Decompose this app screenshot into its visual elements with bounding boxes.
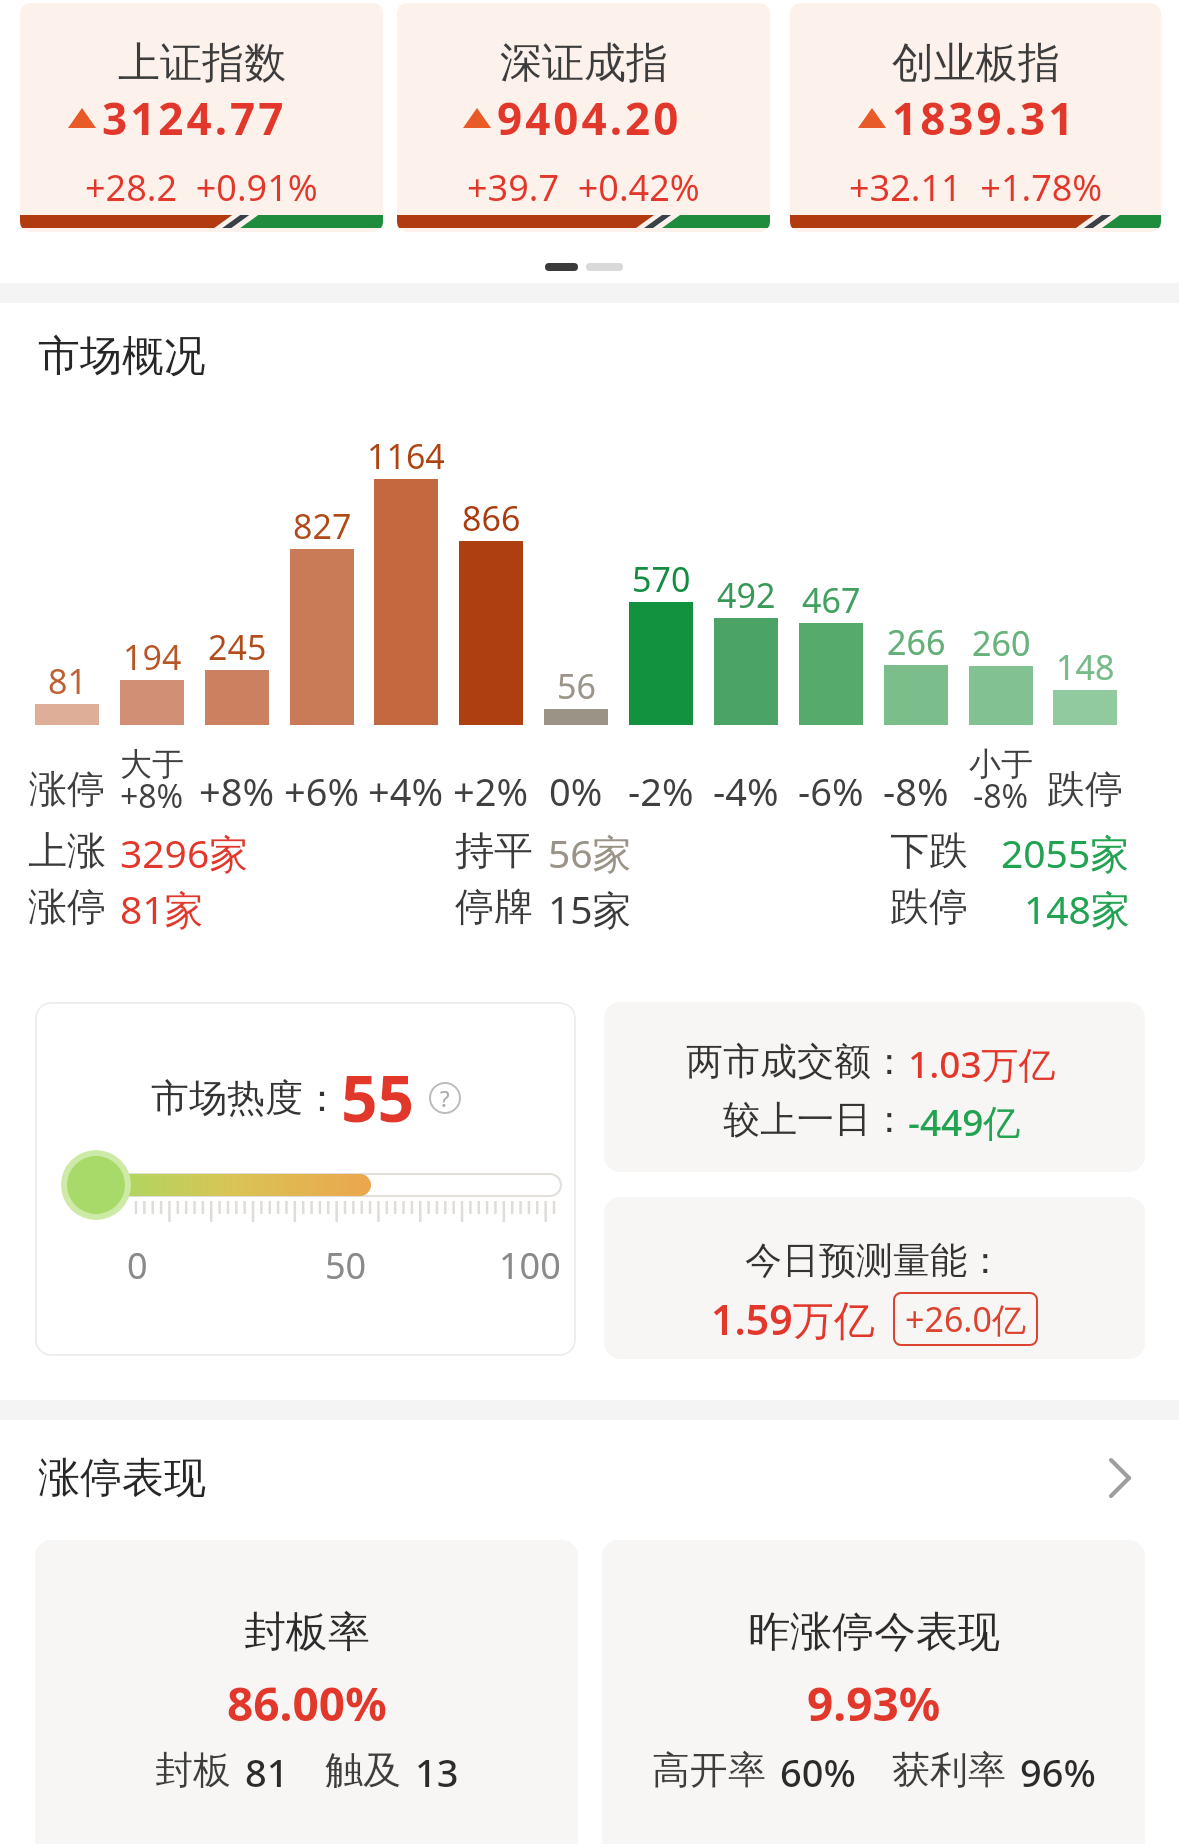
staticText: 492 bbox=[717, 572, 776, 608]
staticText: 涨停表现 bbox=[38, 1452, 206, 1505]
staticText: 3296家 bbox=[120, 826, 249, 879]
staticText: 封板率 bbox=[244, 1606, 370, 1659]
staticText: 81 bbox=[48, 658, 87, 694]
staticText: 60% bbox=[780, 1746, 856, 1798]
staticText: 深证成指 bbox=[500, 37, 668, 90]
staticText: 86.00% bbox=[227, 1672, 387, 1735]
staticText: 大于 bbox=[120, 744, 184, 780]
staticText: 上证指数 bbox=[118, 37, 286, 90]
staticText: +4% bbox=[368, 765, 444, 809]
staticText: 3124.77 bbox=[102, 88, 287, 148]
staticText: +28.2 +0.91% bbox=[85, 163, 318, 212]
staticText: 866 bbox=[462, 495, 521, 531]
staticText: 跌停 bbox=[890, 882, 968, 931]
staticText: -4% bbox=[713, 765, 779, 809]
staticText: 148 bbox=[1056, 644, 1115, 680]
staticText: 467 bbox=[802, 577, 861, 613]
button[interactable]: 昨涨停今表现 bbox=[602, 1540, 1145, 1844]
staticText: 停牌 bbox=[455, 882, 533, 931]
staticText: 涨停 bbox=[28, 882, 106, 931]
staticText: 1.03万亿 bbox=[908, 1038, 1056, 1089]
button[interactable]: 市场热度： bbox=[35, 1002, 576, 1356]
button[interactable]: 创业板指 bbox=[790, 3, 1161, 232]
staticText: 9404.20 bbox=[497, 88, 682, 148]
staticText: +32.11 +1.78% bbox=[849, 163, 1103, 212]
staticText: 56家 bbox=[548, 826, 632, 879]
staticText: 15家 bbox=[548, 882, 632, 935]
staticText: -8% bbox=[883, 765, 949, 809]
staticText: 50 bbox=[325, 1241, 367, 1290]
staticText: 两市成交额： bbox=[686, 1038, 908, 1085]
staticText: 194 bbox=[123, 634, 182, 670]
staticText: 市场概况 bbox=[38, 330, 206, 383]
staticText: 55 bbox=[341, 1054, 415, 1141]
staticText: 81家 bbox=[120, 882, 204, 935]
staticText: 触及 bbox=[325, 1746, 401, 1794]
staticText: +6% bbox=[284, 765, 360, 809]
staticText: +8% bbox=[120, 774, 184, 810]
staticText: 创业板指 bbox=[892, 37, 1060, 90]
staticText: +26.0亿 bbox=[905, 1296, 1026, 1342]
staticText: 100 bbox=[499, 1241, 561, 1290]
staticText: -8% bbox=[973, 774, 1029, 810]
staticText: 涨停 bbox=[29, 765, 105, 809]
staticText: 260 bbox=[972, 620, 1031, 656]
staticText: 9.93% bbox=[807, 1672, 941, 1735]
staticText: 持平 bbox=[455, 826, 533, 875]
staticText: +39.7 +0.42% bbox=[467, 163, 700, 212]
button[interactable]: 封板率 bbox=[35, 1540, 578, 1844]
staticText: 81 bbox=[245, 1746, 289, 1798]
staticText: -2% bbox=[628, 765, 694, 809]
staticText: -449亿 bbox=[908, 1096, 1021, 1147]
staticText: 2055家 bbox=[1001, 826, 1130, 879]
staticText: 今日预测量能： bbox=[745, 1237, 1004, 1284]
staticText: 下跌 bbox=[890, 826, 968, 875]
staticText: 较上一日： bbox=[723, 1096, 908, 1143]
button[interactable]: 上证指数 bbox=[20, 3, 383, 232]
staticText: 获利率 bbox=[892, 1746, 1006, 1794]
staticText: 高开率 bbox=[652, 1746, 766, 1794]
staticText: 1164 bbox=[367, 433, 445, 469]
staticText: +2% bbox=[453, 765, 529, 809]
staticText: 跌停 bbox=[1047, 765, 1123, 809]
staticText: 13 bbox=[415, 1746, 459, 1798]
staticText: 148家 bbox=[1024, 882, 1130, 935]
staticText: 市场热度： bbox=[151, 1074, 341, 1122]
staticText: 827 bbox=[293, 503, 352, 539]
staticText: 245 bbox=[208, 624, 267, 660]
staticText: 56 bbox=[557, 663, 596, 699]
staticText: 1.59万亿 bbox=[711, 1291, 875, 1347]
staticText: 昨涨停今表现 bbox=[748, 1606, 1000, 1659]
staticText: 封板 bbox=[155, 1746, 231, 1794]
staticText: 1839.31 bbox=[892, 88, 1077, 148]
staticText: 266 bbox=[887, 619, 946, 655]
staticText: 570 bbox=[632, 556, 691, 592]
staticText: 0% bbox=[549, 765, 603, 809]
staticText: +8% bbox=[199, 765, 275, 809]
staticText: -6% bbox=[798, 765, 864, 809]
staticText: 小于 bbox=[969, 744, 1033, 780]
staticText: 0 bbox=[127, 1241, 148, 1290]
staticText: ? bbox=[440, 1083, 450, 1113]
staticText: 96% bbox=[1020, 1746, 1096, 1798]
staticText: 上涨 bbox=[28, 826, 106, 875]
button[interactable]: 涨停表现 bbox=[0, 1450, 1179, 1506]
button[interactable]: 深证成指 bbox=[397, 3, 770, 232]
